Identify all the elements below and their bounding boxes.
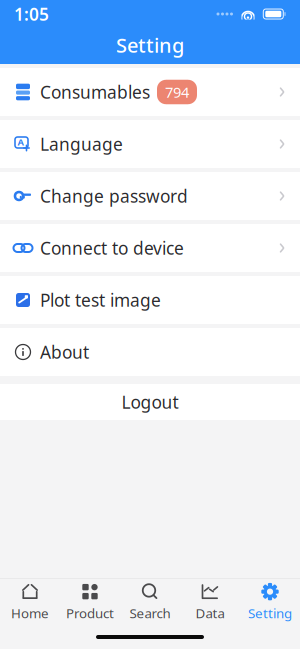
staticText: Home (11, 604, 49, 622)
staticText: Setting (116, 32, 184, 58)
staticText: Connect to device (40, 236, 184, 259)
button[interactable]: Change password (0, 172, 300, 220)
staticText: Logout (121, 390, 178, 413)
button[interactable]: Connect to device (0, 224, 300, 272)
staticText: Product (66, 604, 114, 622)
button[interactable]: About (0, 328, 300, 376)
staticText: Plot test image (40, 288, 161, 311)
staticText: 794 (165, 82, 189, 102)
staticText: A (17, 136, 23, 148)
staticText: About (40, 340, 89, 363)
button[interactable]: Data (180, 580, 240, 624)
staticText: Setting (248, 604, 292, 622)
staticText: 1:05 (14, 2, 49, 25)
button[interactable]: Search (120, 580, 180, 624)
staticText: Data (195, 604, 224, 622)
button[interactable]: Logout (0, 384, 300, 420)
staticText: Change password (40, 184, 188, 207)
staticText: Language (40, 132, 123, 155)
button[interactable]: Setting (240, 580, 300, 624)
staticText: Consumables (40, 80, 150, 103)
button[interactable]: Product (60, 580, 120, 624)
button[interactable]: Plot test image (0, 276, 300, 324)
staticText: Search (129, 604, 170, 622)
button[interactable]: Consumables (0, 68, 300, 116)
button[interactable]: Home (0, 580, 60, 624)
button[interactable]: A (0, 120, 300, 168)
